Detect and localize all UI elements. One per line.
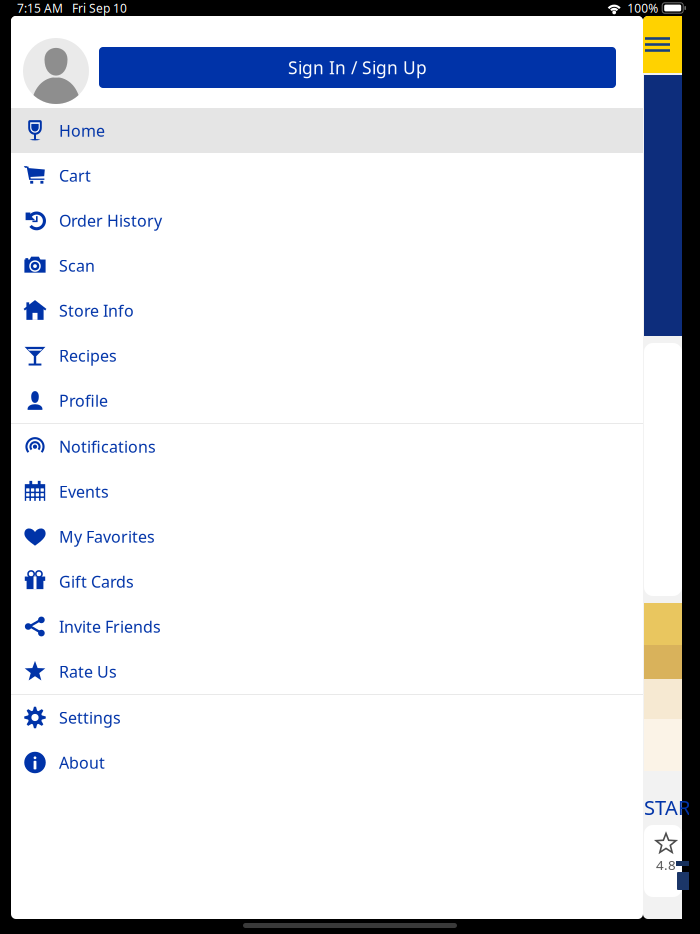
button[interactable]: Sign In / Sign Up xyxy=(99,47,616,88)
staticText: Order History xyxy=(59,210,162,231)
button[interactable]: My Favorites xyxy=(11,514,643,559)
staticText: Sign In / Sign Up xyxy=(288,56,427,79)
staticText: Fri Sep 10 xyxy=(72,0,127,16)
button[interactable]: Rate Us xyxy=(11,649,643,694)
staticText: About xyxy=(59,752,105,773)
button[interactable]: Profile xyxy=(11,378,643,423)
staticText: Home xyxy=(59,120,105,141)
button[interactable]: Notifications xyxy=(11,424,643,469)
staticText: Events xyxy=(59,481,109,502)
button[interactable]: About xyxy=(11,740,643,785)
button[interactable]: Events xyxy=(11,469,643,514)
staticText: STAR xyxy=(644,794,690,821)
staticText: Recipes xyxy=(59,345,117,366)
staticText: Cart xyxy=(59,165,91,186)
button[interactable]: Cart xyxy=(11,153,643,198)
button[interactable]: Invite Friends xyxy=(11,604,643,649)
staticText: 100% xyxy=(627,0,658,16)
staticText: My Favorites xyxy=(59,526,155,547)
staticText: Scan xyxy=(59,255,95,276)
button[interactable]: Settings xyxy=(11,695,643,740)
button[interactable]: Scan xyxy=(11,243,643,288)
staticText: 4.8 xyxy=(656,856,676,874)
staticText: Profile xyxy=(59,390,108,411)
staticText: Invite Friends xyxy=(59,616,161,637)
button[interactable]: Gift Cards xyxy=(11,559,643,604)
button[interactable]: Order History xyxy=(11,198,643,243)
staticText: Notifications xyxy=(59,436,156,457)
staticText: Rate Us xyxy=(59,661,117,682)
button[interactable]: Store Info xyxy=(11,288,643,333)
staticText: Gift Cards xyxy=(59,571,134,592)
button[interactable]: Menu xyxy=(636,16,682,73)
staticText: 7:15 AM xyxy=(17,0,63,16)
staticText: Settings xyxy=(59,707,121,728)
button[interactable]: Recipes xyxy=(11,333,643,378)
staticText: Store Info xyxy=(59,300,134,321)
button[interactable]: Home xyxy=(11,108,643,153)
